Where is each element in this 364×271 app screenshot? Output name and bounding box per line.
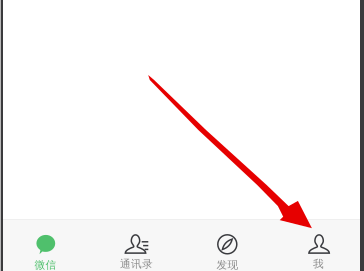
staticText: 通讯录 xyxy=(120,257,153,271)
staticText: 我 xyxy=(313,257,324,271)
staticText: 微信 xyxy=(34,258,56,271)
button[interactable]: 我 xyxy=(273,220,364,271)
button[interactable]: 微信 xyxy=(0,220,91,271)
button[interactable]: 发现 xyxy=(182,220,273,271)
staticText: 发现 xyxy=(216,258,238,271)
button[interactable]: 通讯录 xyxy=(91,220,182,271)
